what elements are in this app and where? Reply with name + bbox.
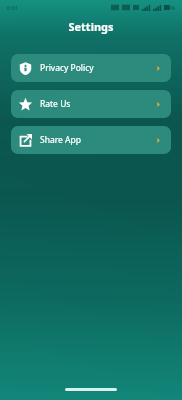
button[interactable]: Privacy Policy [11, 54, 171, 82]
button[interactable]: Share App [11, 126, 171, 154]
other: Share App [19, 134, 32, 147]
other: Open Share App [156, 138, 161, 143]
button[interactable]: Rate Us [11, 90, 171, 118]
other: Privacy Policy [19, 62, 32, 75]
other: Open Privacy Policy [156, 66, 161, 71]
staticText: 6:01 [7, 4, 18, 11]
staticText: 74% [164, 4, 175, 11]
staticText: Settings [68, 19, 114, 34]
other: Open Rate Us [156, 102, 161, 107]
staticText: Rate Us [40, 98, 71, 110]
staticText: Privacy Policy [40, 62, 94, 74]
staticText: Share App [40, 134, 81, 146]
other: Rate Us [19, 98, 32, 111]
